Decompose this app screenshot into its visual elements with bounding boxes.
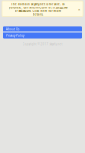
staticText: Privacy Policy bbox=[6, 33, 24, 37]
staticText: purchase, call Afternic.com at +1 339-22… bbox=[8, 6, 67, 9]
button[interactable]: About Us bbox=[3, 26, 82, 32]
staticText: × bbox=[78, 7, 80, 12]
staticText: The domain skysrly.net is for sale. To bbox=[11, 2, 65, 6]
staticText: About Us bbox=[6, 27, 19, 31]
staticText: or 888-836-6791. Click here for more bbox=[14, 9, 61, 13]
button[interactable]: Privacy Policy bbox=[3, 32, 82, 38]
button[interactable]: The domain skysrly.net is for sale. To bbox=[2, 1, 83, 16]
staticText: Copyright © 2017 skysrly.net bbox=[22, 42, 62, 46]
staticText: details. bbox=[32, 13, 43, 16]
